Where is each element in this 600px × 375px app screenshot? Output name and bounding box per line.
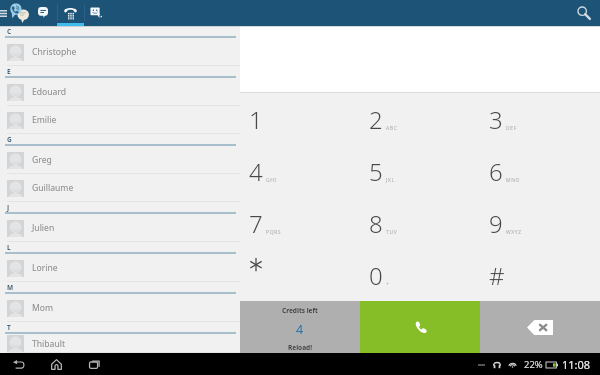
staticText: 4 [249, 155, 263, 188]
button[interactable]: 2 [360, 93, 480, 145]
staticText: 9 [489, 207, 503, 240]
button[interactable]: 6 [480, 145, 600, 197]
button[interactable]: 7 [240, 197, 360, 249]
button[interactable]: Back [9, 353, 29, 375]
staticText: # [489, 259, 505, 292]
button[interactable]: 5 [360, 145, 480, 197]
staticText: Christophe [32, 46, 77, 58]
button[interactable]: Call [360, 301, 480, 353]
button[interactable]: Mom [0, 294, 240, 322]
button[interactable]: 4 [240, 145, 360, 197]
staticText: + [386, 281, 390, 288]
staticText: Lorine [32, 262, 58, 274]
staticText: E [7, 67, 11, 76]
staticText: J [7, 203, 10, 212]
staticText: 4 [296, 321, 304, 338]
button[interactable]: Search [566, 0, 600, 26]
button[interactable]: Stickers [84, 0, 107, 26]
staticText: Emilie [32, 114, 57, 126]
staticText: Mom [32, 302, 54, 314]
staticText: ABC [386, 125, 398, 132]
button[interactable]: Thibault [0, 334, 240, 353]
button[interactable]: Chats [30, 0, 56, 26]
button[interactable]: Delete [480, 301, 600, 353]
staticText: L [7, 243, 11, 252]
staticText: 8 [369, 207, 383, 240]
staticText: GHI [266, 177, 277, 184]
staticText: 2 [369, 103, 383, 136]
button[interactable]: Emilie [0, 106, 240, 134]
button[interactable]: Lorine [0, 254, 240, 282]
staticText: 0 [369, 259, 383, 292]
button[interactable]: 1 [240, 93, 360, 145]
button[interactable]: 9 [480, 197, 600, 249]
staticText: Edouard [32, 86, 67, 98]
button[interactable]: Guillaume [0, 174, 240, 202]
button[interactable]: # [480, 249, 600, 301]
staticText: Guillaume [32, 182, 74, 194]
staticText: 6 [489, 155, 503, 188]
staticText: Julien [32, 222, 55, 234]
staticText: 3 [489, 103, 503, 136]
button[interactable]: 8 [360, 197, 480, 249]
staticText: 1 [249, 103, 263, 136]
button[interactable]: Recents [84, 353, 104, 375]
button[interactable]: Menu [0, 0, 8, 26]
staticText: 22% [524, 358, 543, 371]
staticText: PQRS [266, 229, 282, 236]
staticText: Reload! [288, 343, 312, 352]
staticText: Thibault [32, 338, 66, 350]
button[interactable]: Julien [0, 214, 240, 242]
staticText: TUV [386, 229, 398, 236]
staticText: MNO [506, 177, 521, 184]
staticText: G [7, 135, 12, 144]
button[interactable]: 3 [480, 93, 600, 145]
button[interactable]: Edouard [0, 78, 240, 106]
button[interactable] [240, 249, 360, 301]
button[interactable]: Home [46, 353, 66, 375]
staticText: M [7, 283, 14, 292]
staticText: Greg [32, 154, 52, 166]
button[interactable]: Greg [0, 146, 240, 174]
staticText: 7 [249, 207, 263, 240]
button[interactable]: 0 [360, 249, 480, 301]
staticText: WXYZ [506, 229, 522, 236]
staticText: 11:08 [562, 357, 591, 372]
staticText: JKL [386, 177, 395, 184]
button[interactable] [240, 26, 600, 92]
staticText: T [7, 323, 11, 332]
staticText: 5 [369, 155, 383, 188]
button[interactable]: Christophe [0, 38, 240, 66]
staticText: C [7, 27, 12, 36]
button[interactable]: Keypad [57, 0, 84, 26]
staticText: Credits left [282, 306, 318, 315]
button[interactable]: Credits left [240, 301, 360, 353]
staticText: DEF [506, 125, 517, 132]
